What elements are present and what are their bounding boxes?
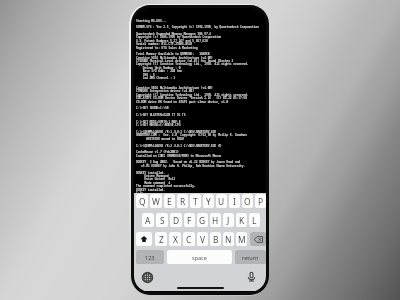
staticText: Q [139, 196, 146, 207]
button[interactable]: Backspace [250, 232, 266, 246]
staticText: B [213, 234, 219, 245]
button[interactable]: F [184, 213, 195, 227]
button[interactable]: T [190, 194, 201, 208]
button[interactable]: M [236, 232, 247, 246]
staticText: Registered to: ETG Sales & Marketing [136, 46, 198, 50]
staticText: DOSKEY, 2 Aug 2002. Based on v6.22 DOSKE… [136, 160, 241, 164]
button[interactable]: A [142, 213, 154, 227]
staticText: G [199, 215, 206, 226]
staticText: J [227, 215, 230, 226]
staticText: Z [159, 234, 164, 245]
staticText: Mode command 4 [136, 181, 171, 185]
button[interactable]: K [236, 213, 247, 227]
button[interactable]: R [177, 194, 188, 208]
button[interactable]: Z [155, 232, 167, 246]
button[interactable]: J [223, 213, 234, 227]
staticText: C:\>_ [136, 191, 145, 195]
button[interactable]: space [167, 250, 232, 264]
staticText: CTSOUND Physical-Level driver (v4.01) fo… [136, 59, 234, 63]
staticText: D [173, 215, 180, 226]
staticText: C [186, 234, 192, 245]
button[interactable]: C [183, 232, 195, 246]
button[interactable]: Dictate [246, 271, 257, 282]
staticText: CacheMouse v1.7 (Feb2001) [136, 150, 179, 154]
staticText: Creative SB16 Multimedia Architecture (v… [136, 56, 213, 60]
button[interactable]: D [170, 213, 182, 227]
staticText: Low DMA Channel : 1 [136, 76, 176, 80]
button[interactable]: I [229, 194, 240, 208]
staticText: L [252, 215, 257, 226]
staticText: E [167, 196, 172, 207]
staticText: M [238, 234, 246, 245]
button[interactable]: U [216, 194, 227, 208]
staticText: F [187, 215, 192, 226]
staticText: Serial number: 011-CTP-23585-0543 [136, 42, 193, 46]
staticText: space [192, 254, 207, 261]
staticText: C:\>\QEMM\LOADHI /R:2 /LO:1 C:\DOS\SMART… [136, 144, 222, 148]
staticText: Copyright (c) 1986-1995 by Quarterdeck C… [136, 35, 222, 39]
staticText: IRQ : 5 [136, 73, 155, 77]
staticText: Driver Managed [136, 174, 169, 178]
staticText: SMARTDRV.COM : Ver. 2.0, Copyright (C)92… [136, 133, 247, 137]
button[interactable]: B [210, 232, 221, 246]
staticText: C:\>SET BLASTER=A220 I7 D1 T5 [136, 113, 186, 117]
staticText: C:\>SET MOUSE=C:\MOUSE.CFG [136, 123, 181, 127]
staticText: T [193, 196, 198, 207]
staticText: C:\>\QEMM\LOADHI /R:1 /LO:1 C:\DOS\SMART… [136, 130, 217, 134]
button[interactable]: H [210, 213, 221, 227]
staticText: P [258, 196, 264, 207]
staticText: U.S. Patent Numbers 5,27,247 and 5,367,6… [136, 39, 208, 43]
button[interactable]: Q [136, 194, 148, 208]
staticText: Y [206, 196, 211, 207]
staticText: N [225, 234, 232, 245]
staticText: Quarterdeck Expanded Memory Manager 386 … [136, 32, 212, 36]
staticText: Driver Unit Number : 0 [136, 66, 181, 70]
staticText: U [218, 196, 225, 207]
staticText: X [173, 234, 178, 245]
staticText: Installed on COM1 (MSMOUSE/MSM) to Micro… [136, 154, 222, 158]
staticText: Drive Driver 0x13 [136, 177, 176, 181]
staticText: v5.01 DOSKEY by John H. Philip, Sub Rout… [136, 164, 246, 168]
staticText: CTMOUSE Integration driver (v4.00) [136, 89, 195, 93]
staticText: R [180, 196, 186, 207]
button[interactable]: W [150, 194, 162, 208]
button[interactable]: E [164, 194, 175, 208]
button[interactable]: G [197, 213, 208, 227]
button[interactable]: L [249, 213, 260, 227]
staticText: S [160, 215, 165, 226]
staticText: IDE-ATAPI CD-ROM Device Driver Version 2… [136, 96, 247, 100]
staticText: Copyright (C) Creative Technology Ltd., … [136, 93, 249, 97]
button[interactable]: S [156, 213, 168, 227]
button[interactable]: P [255, 194, 266, 208]
staticText: Total Memory Available to QEMM386: 1680K… [136, 52, 210, 56]
button[interactable]: return [235, 250, 266, 264]
staticText: WRITECHK moved to HIGH [136, 137, 184, 141]
staticText: O [244, 196, 251, 207]
staticText: The command completed successfully. [136, 184, 196, 188]
button[interactable]: N [223, 232, 234, 246]
button[interactable]: X [169, 232, 181, 246]
staticText: return [242, 254, 259, 261]
button[interactable]: Y [203, 194, 214, 208]
staticText: Base I/O Addr : 220 hex [136, 69, 183, 73]
staticText: 123 [145, 254, 155, 261]
staticText: W [152, 196, 160, 207]
staticText: Creative SB16 Multimedia Architecture (v… [136, 86, 213, 90]
button[interactable]: V [197, 232, 208, 246]
staticText: I [233, 196, 236, 207]
staticText: C:\>SET SOUND=C:\SB [136, 106, 169, 110]
staticText: V [200, 234, 206, 245]
button[interactable]: Shift [136, 232, 152, 246]
staticText: DOSKEY installed. [136, 188, 166, 192]
staticText: HIMEM.SYS : Ver 2.5, Copyright (c) 1992-… [136, 25, 259, 29]
staticText: DOSKEY installed. [136, 171, 166, 175]
button[interactable]: Change keyboard [142, 272, 153, 283]
staticText: A [145, 215, 151, 226]
staticText: H [212, 215, 219, 226]
button[interactable]: O [242, 194, 253, 208]
staticText: C:\>SET MIDI=SYNTH:1 MAP:E [136, 120, 181, 124]
staticText: CD-ROM drive 00 found on ATAPI port slav… [136, 100, 229, 104]
staticText: Starting MS-DOS... [136, 19, 167, 23]
button[interactable]: 123 [136, 250, 164, 264]
staticText: Copyright (C) Creative Technology Ltd., … [136, 62, 249, 66]
